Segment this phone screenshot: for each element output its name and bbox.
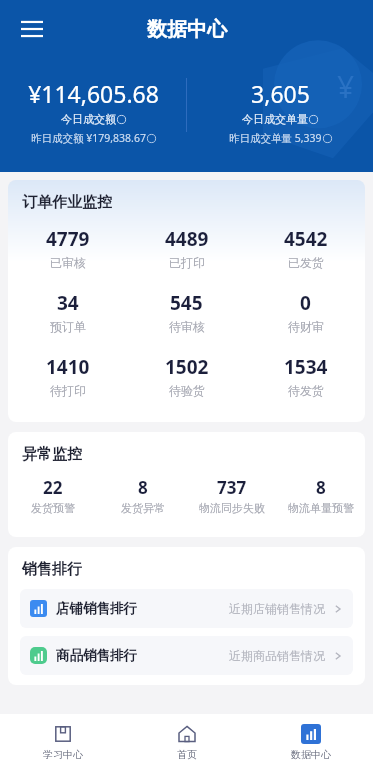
button[interactable]: ¥114,605.68 [0, 78, 186, 145]
button[interactable]: 1410 [8, 354, 127, 398]
button[interactable]: 4779 [8, 226, 127, 270]
staticText: 昨日成交单量 5,339 [229, 131, 322, 145]
button[interactable]: 1502 [127, 354, 246, 398]
button[interactable]: 1534 [246, 354, 365, 398]
button[interactable]: 店铺销售排行 [20, 589, 353, 628]
button[interactable]: 3,605 [187, 78, 373, 145]
button[interactable]: 首页 [125, 714, 249, 770]
staticText: 已打印 [169, 255, 205, 270]
staticText: 首页 [177, 748, 197, 761]
button[interactable]: 4489 [127, 226, 246, 270]
button[interactable]: 学习中心 [0, 714, 125, 770]
staticText: 已发货 [288, 255, 324, 270]
staticText: 近期店铺销售情况 [229, 601, 325, 616]
staticText: 4489 [165, 226, 209, 252]
staticText: 待发货 [288, 383, 324, 398]
staticText: 今日成交额 [61, 112, 116, 126]
staticText: 预订单 [50, 319, 86, 334]
staticText: ¥114,605.68 [28, 78, 159, 109]
staticText: 3,605 [251, 78, 310, 109]
staticText: 737 [217, 476, 247, 499]
staticText: 1410 [46, 354, 90, 380]
staticText: 待财审 [288, 319, 324, 334]
staticText: 发货预警 [31, 501, 75, 515]
staticText: 8 [138, 476, 148, 499]
staticText: 近期商品销售情况 [229, 648, 325, 663]
button[interactable]: 34 [8, 290, 127, 334]
staticText: 发货异常 [121, 501, 165, 515]
staticText: 待审核 [169, 319, 205, 334]
staticText: 物流同步失败 [199, 501, 265, 515]
button[interactable]: 4542 [246, 226, 365, 270]
staticText: 数据中心 [291, 748, 331, 761]
staticText: 物流单量预警 [288, 501, 354, 515]
staticText: 订单作业监控 [22, 193, 112, 212]
staticText: 0 [300, 290, 311, 316]
staticText: 34 [57, 290, 79, 316]
staticText: 4779 [46, 226, 90, 252]
staticText: 8 [316, 476, 326, 499]
button[interactable]: 22 [8, 476, 98, 515]
button[interactable]: 商品销售排行 [20, 636, 353, 675]
staticText: 数据中心 [147, 17, 227, 42]
staticText: 异常监控 [22, 445, 82, 464]
staticText: 待打印 [50, 383, 86, 398]
button[interactable]: 数据中心 [249, 714, 373, 770]
button[interactable]: 8 [276, 476, 365, 515]
staticText: 4542 [284, 226, 328, 252]
staticText: 545 [170, 290, 203, 316]
staticText: 已审核 [50, 255, 86, 270]
staticText: 22 [43, 476, 63, 499]
staticText: 今日成交单量 [242, 112, 308, 126]
staticText: ¥ [337, 66, 355, 100]
button[interactable]: 545 [127, 290, 246, 334]
staticText: 待验货 [169, 383, 205, 398]
button[interactable]: 0 [246, 290, 365, 334]
staticText: 销售排行 [22, 560, 82, 579]
staticText: 1534 [284, 354, 328, 380]
staticText: 昨日成交额 ¥179,838.67 [31, 131, 146, 145]
button[interactable]: 8 [98, 476, 187, 515]
button[interactable]: 737 [187, 476, 276, 515]
staticText: 店铺销售排行 [56, 600, 137, 617]
button[interactable]: Menu [10, 7, 54, 51]
staticText: 1502 [165, 354, 209, 380]
staticText: 学习中心 [43, 748, 83, 761]
staticText: 商品销售排行 [56, 647, 137, 664]
